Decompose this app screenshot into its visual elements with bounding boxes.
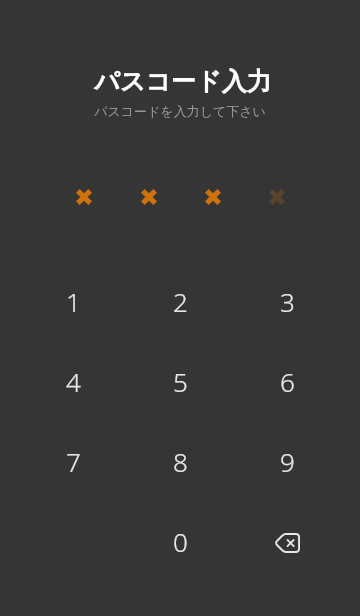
staticText: 3: [280, 284, 295, 319]
staticText: 4: [66, 364, 81, 399]
staticText: 1: [66, 284, 81, 319]
staticText: 7: [66, 444, 81, 479]
staticText: 0: [173, 524, 188, 559]
staticText: 2: [173, 284, 188, 319]
button[interactable]: 4: [37, 343, 109, 419]
button[interactable]: 5: [144, 343, 216, 419]
staticText: パスコード入力: [3, 66, 360, 97]
staticText: 9: [280, 444, 295, 479]
button[interactable]: 8: [144, 423, 216, 499]
button[interactable]: 7: [37, 423, 109, 499]
button[interactable]: 2: [144, 263, 216, 339]
button[interactable]: 0: [144, 503, 216, 579]
staticText: 8: [173, 444, 188, 479]
button[interactable]: 1: [37, 263, 109, 339]
button[interactable]: 9: [251, 423, 323, 499]
staticText: 6: [280, 364, 295, 399]
button[interactable]: Backspace: [251, 505, 323, 581]
button[interactable]: 6: [251, 343, 323, 419]
staticText: パスコードを入力して下さい: [0, 103, 360, 119]
button[interactable]: 3: [251, 263, 323, 339]
staticText: 5: [173, 364, 188, 399]
